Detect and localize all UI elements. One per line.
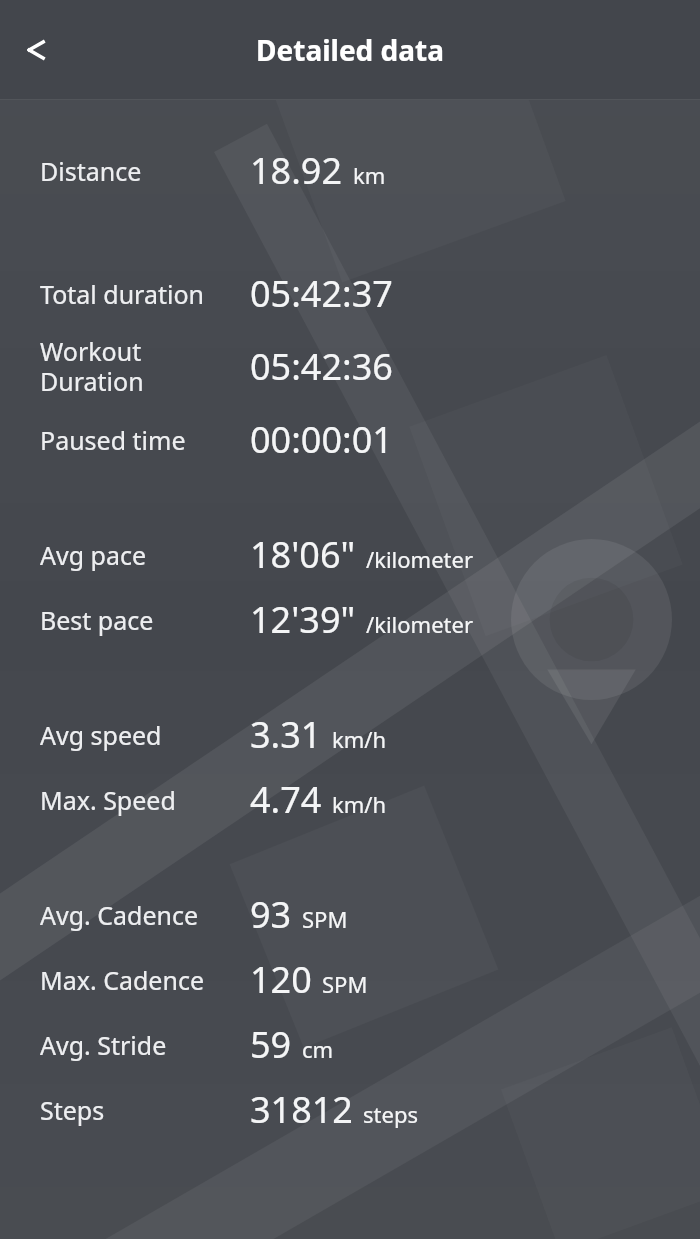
staticText: Avg. Cadence	[40, 898, 199, 932]
staticText: SPM	[322, 969, 368, 999]
button[interactable]: Avg. Stride	[0, 1020, 700, 1069]
staticText: /kilometer	[366, 544, 474, 574]
staticText: Max. Speed	[40, 783, 176, 817]
button[interactable]: Workout Duration	[0, 334, 700, 399]
staticText: 59	[250, 1020, 292, 1069]
button[interactable]: Best pace	[0, 595, 700, 644]
staticText: SPM	[302, 904, 348, 934]
staticText: km/h	[332, 789, 387, 819]
staticText: km	[353, 160, 386, 190]
staticText: 4.74	[250, 775, 322, 824]
staticText: Avg pace	[40, 538, 147, 572]
staticText: Paused time	[40, 423, 186, 457]
staticText: Steps	[40, 1093, 105, 1127]
staticText: 18'06"	[250, 530, 356, 579]
button[interactable]: Avg. Cadence	[0, 890, 700, 939]
button[interactable]: Paused time	[0, 415, 700, 464]
staticText: 18.92	[250, 146, 343, 195]
staticText: Workout Duration	[40, 334, 144, 399]
staticText: 93	[250, 890, 292, 939]
button[interactable]: Avg pace	[0, 530, 700, 579]
staticText: 3.31	[250, 710, 322, 759]
staticText: Detailed data	[0, 31, 700, 69]
staticText: Total duration	[40, 277, 205, 311]
staticText: 05:42:37	[250, 269, 393, 318]
staticText: Avg speed	[40, 718, 162, 752]
staticText: Distance	[40, 154, 142, 188]
button[interactable]: Max. Cadence	[0, 955, 700, 1004]
button[interactable]: Avg speed	[0, 710, 700, 759]
button[interactable]: Total duration	[0, 269, 700, 318]
staticText: km/h	[332, 724, 387, 754]
button[interactable]: Back	[0, 14, 72, 86]
staticText: Max. Cadence	[40, 963, 204, 997]
button[interactable]: Distance	[0, 146, 700, 195]
staticText: steps	[363, 1099, 418, 1129]
staticText: 31812	[250, 1085, 353, 1134]
staticText: 05:42:36	[250, 342, 393, 391]
staticText: 12'39"	[250, 595, 356, 644]
button[interactable]: Max. Speed	[0, 775, 700, 824]
staticText: 120	[250, 955, 312, 1004]
staticText: cm	[302, 1034, 334, 1064]
staticText: /kilometer	[366, 609, 474, 639]
button[interactable]: Steps	[0, 1085, 700, 1134]
staticText: 00:00:01	[250, 415, 393, 464]
staticText: Avg. Stride	[40, 1028, 167, 1062]
staticText: Best pace	[40, 603, 154, 637]
